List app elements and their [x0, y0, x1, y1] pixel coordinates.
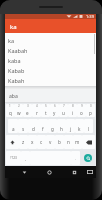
button[interactable]: Kabah: [5, 75, 96, 85]
staticText: 7: [63, 104, 65, 108]
button[interactable]: a: [8, 119, 18, 133]
staticText: u: [62, 110, 65, 116]
staticText: t: [45, 110, 47, 116]
staticText: k: [78, 126, 81, 132]
button[interactable]: Kaabah: [5, 45, 96, 55]
staticText: e: [26, 110, 29, 116]
staticText: 6: [54, 104, 56, 108]
staticText: 9: [81, 104, 83, 108]
staticText: p: [89, 110, 92, 116]
button[interactable]: b: [55, 135, 64, 149]
staticText: ka: [10, 23, 17, 31]
button[interactable]: Recents: [68, 166, 81, 178]
button[interactable]: m: [73, 135, 82, 149]
staticText: r: [36, 110, 38, 116]
button[interactable]: h: [57, 119, 66, 133]
button[interactable]: 5: [41, 104, 50, 117]
button[interactable]: ka: [5, 35, 96, 45]
staticText: h: [60, 126, 63, 132]
button[interactable]: ?123: [6, 151, 21, 165]
staticText: Kabab: [8, 67, 25, 74]
button[interactable]: x: [28, 135, 37, 149]
staticText: .: [75, 156, 77, 161]
staticText: 3: [27, 104, 29, 108]
staticText: d: [32, 126, 35, 132]
staticText: 5: [45, 104, 47, 108]
button[interactable]: 7: [59, 104, 68, 117]
staticText: aba: [9, 93, 18, 100]
staticText: v: [49, 139, 52, 145]
button[interactable]: s: [18, 119, 28, 133]
button[interactable]: 6: [50, 104, 59, 117]
button[interactable]: ,: [21, 151, 30, 165]
button[interactable]: l: [84, 119, 93, 133]
button[interactable]: 4: [32, 104, 41, 117]
button[interactable]: 0: [86, 104, 95, 117]
staticText: o: [80, 110, 83, 116]
button[interactable]: Back: [18, 166, 31, 178]
button[interactable]: Search: [81, 152, 94, 164]
staticText: i: [72, 110, 74, 116]
staticText: y: [53, 110, 56, 116]
button[interactable]: Shift: [6, 135, 19, 149]
staticText: w: [17, 110, 21, 116]
button[interactable]: k: [75, 119, 84, 133]
button[interactable]: d: [28, 119, 38, 133]
staticText: ,: [25, 156, 27, 161]
staticText: g: [51, 126, 54, 132]
staticText: z: [22, 139, 25, 145]
button[interactable]: z: [19, 135, 28, 149]
button[interactable]: c: [37, 135, 46, 149]
button[interactable]: 8: [68, 104, 77, 117]
staticText: s: [22, 126, 25, 132]
button[interactable]: Backspace: [82, 135, 95, 149]
button[interactable]: Home: [43, 166, 56, 178]
button[interactable]: v: [46, 135, 55, 149]
staticText: x: [31, 139, 34, 145]
staticText: kaba: [8, 57, 21, 64]
staticText: l: [88, 126, 90, 132]
button[interactable]: kaba: [5, 55, 96, 65]
staticText: ka: [8, 37, 15, 44]
button[interactable]: 9: [77, 104, 86, 117]
staticText: 4: [36, 104, 38, 108]
staticText: ?123: [10, 156, 17, 160]
staticText: Kabah: [8, 77, 25, 84]
button[interactable]: 1: [6, 104, 14, 117]
staticText: 1: [9, 104, 11, 108]
staticText: q: [9, 110, 12, 116]
button[interactable]: 3: [23, 104, 32, 117]
button[interactable]: j: [66, 119, 75, 133]
staticText: b: [58, 139, 61, 145]
button[interactable]: n: [64, 135, 73, 149]
staticText: a: [12, 126, 15, 132]
button[interactable]: Switch keyboard: [84, 166, 95, 178]
button[interactable]: Kabab: [5, 65, 96, 75]
staticText: 8: [72, 104, 74, 108]
button[interactable]: f: [38, 119, 48, 133]
button[interactable]: 2: [14, 104, 23, 117]
staticText: n: [67, 139, 70, 145]
staticText: Kaabah: [8, 47, 28, 54]
staticText: m: [75, 139, 80, 145]
staticText: c: [40, 139, 43, 145]
staticText: j: [70, 126, 72, 132]
staticText: 2: [18, 104, 20, 108]
staticText: 1:39: [86, 14, 94, 19]
staticText: 0: [90, 104, 92, 108]
button[interactable]: g: [48, 119, 57, 133]
staticText: f: [42, 126, 44, 132]
